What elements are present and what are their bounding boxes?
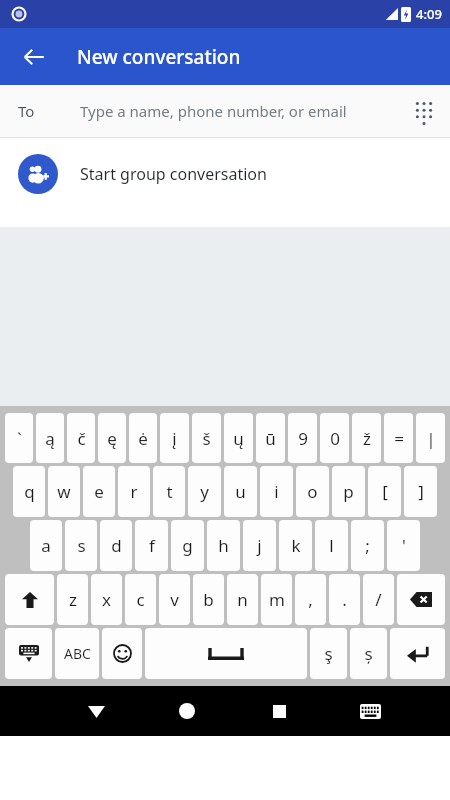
staticText: ; xyxy=(365,534,370,557)
button[interactable]: Back xyxy=(10,33,58,81)
button[interactable]: Dialpad xyxy=(402,89,446,133)
button[interactable]: c xyxy=(125,574,156,625)
button[interactable]: į xyxy=(160,413,189,463)
staticText: y xyxy=(200,480,209,503)
button[interactable]: b xyxy=(193,574,224,625)
staticText: t xyxy=(166,480,173,503)
button[interactable]: ą xyxy=(36,413,64,463)
button[interactable]: Switch keyboard xyxy=(346,687,394,735)
staticText: / xyxy=(375,588,382,611)
button[interactable]: = xyxy=(384,413,413,463)
button[interactable]: , xyxy=(295,574,326,625)
staticText: v xyxy=(170,588,179,611)
staticText: r xyxy=(130,480,138,503)
button[interactable]: ; xyxy=(351,520,384,571)
button[interactable]: w xyxy=(48,466,80,517)
button[interactable]: š xyxy=(192,413,221,463)
staticText: g xyxy=(182,534,193,557)
staticText: i xyxy=(274,480,279,503)
staticText: | xyxy=(426,427,436,450)
staticText: 9 xyxy=(298,427,308,450)
button[interactable]: q xyxy=(13,466,45,517)
button[interactable]: d xyxy=(100,520,132,571)
staticText: d xyxy=(111,534,122,557)
staticText: x xyxy=(102,588,111,611)
button[interactable]: t xyxy=(153,466,185,517)
button[interactable]: j xyxy=(243,520,276,571)
button[interactable]: ū xyxy=(256,413,285,463)
button[interactable]: 9 xyxy=(288,413,317,463)
button[interactable]: ] xyxy=(404,466,437,517)
button[interactable]: z xyxy=(57,574,88,625)
button[interactable]: ` xyxy=(5,413,33,463)
button[interactable]: ę xyxy=(98,413,126,463)
button[interactable]: e xyxy=(83,466,115,517)
button[interactable]: ' xyxy=(387,520,420,571)
button[interactable]: Back xyxy=(72,687,120,735)
button[interactable]: Hide keyboard xyxy=(5,628,52,679)
button[interactable]: s xyxy=(65,520,97,571)
button[interactable]: Home xyxy=(163,687,211,735)
button[interactable]: g xyxy=(171,520,204,571)
staticText: New conversation xyxy=(77,44,241,70)
staticText: ABC xyxy=(64,644,91,663)
button[interactable]: Space xyxy=(145,628,307,679)
button[interactable]: i xyxy=(260,466,293,517)
staticText: j xyxy=(257,534,262,557)
staticText: e xyxy=(94,480,104,503)
button[interactable]: f xyxy=(135,520,168,571)
button[interactable]: r xyxy=(118,466,150,517)
button[interactable]: k xyxy=(279,520,312,571)
button[interactable]: ė xyxy=(129,413,157,463)
staticText: š xyxy=(202,427,211,450)
button[interactable]: Emoji xyxy=(102,628,142,679)
button[interactable]: ş xyxy=(310,628,347,679)
button[interactable]: m xyxy=(261,574,292,625)
button[interactable]: 0 xyxy=(320,413,349,463)
staticText: s xyxy=(77,534,86,557)
staticText: m xyxy=(269,588,285,611)
button[interactable]: Recents xyxy=(255,687,303,735)
button[interactable]: Backspace xyxy=(397,574,445,625)
staticText: ` xyxy=(17,427,22,450)
button[interactable]: x xyxy=(91,574,122,625)
button[interactable]: l xyxy=(315,520,348,571)
staticText: l xyxy=(329,534,334,557)
button[interactable]: u xyxy=(224,466,257,517)
staticText: ] xyxy=(418,480,424,503)
button[interactable]: ș xyxy=(350,628,387,679)
button[interactable]: č xyxy=(67,413,95,463)
staticText: Type a name, phone number, or email xyxy=(80,101,347,121)
staticText: f xyxy=(149,534,155,557)
button[interactable]: p xyxy=(332,466,365,517)
button[interactable]: n xyxy=(227,574,258,625)
button[interactable]: [ xyxy=(368,466,401,517)
button[interactable]: . xyxy=(329,574,360,625)
button[interactable]: o xyxy=(296,466,329,517)
button[interactable]: h xyxy=(207,520,240,571)
staticText: ș xyxy=(364,642,373,665)
button[interactable]: v xyxy=(159,574,190,625)
button[interactable]: y xyxy=(188,466,221,517)
staticText: ą xyxy=(45,427,55,450)
staticText: ş xyxy=(324,642,333,665)
staticText: ų xyxy=(233,427,244,450)
button[interactable]: ž xyxy=(352,413,381,463)
staticText: To xyxy=(18,101,35,121)
staticText: Start group conversation xyxy=(80,163,267,185)
staticText: p xyxy=(343,480,354,503)
button[interactable]: a xyxy=(30,520,62,571)
button[interactable]: To xyxy=(0,85,450,137)
button[interactable]: ABC xyxy=(55,628,99,679)
staticText: , xyxy=(308,588,313,611)
button[interactable]: Shift xyxy=(5,574,54,625)
button[interactable]: ų xyxy=(224,413,253,463)
button[interactable]: Enter xyxy=(390,628,445,679)
staticText: w xyxy=(57,480,71,503)
button[interactable]: | xyxy=(416,413,445,463)
staticText: ė xyxy=(138,427,148,450)
button[interactable]: / xyxy=(363,574,394,625)
staticText: 0 xyxy=(330,427,340,450)
staticText: a xyxy=(41,534,51,557)
button[interactable]: Start group conversation xyxy=(0,138,450,210)
